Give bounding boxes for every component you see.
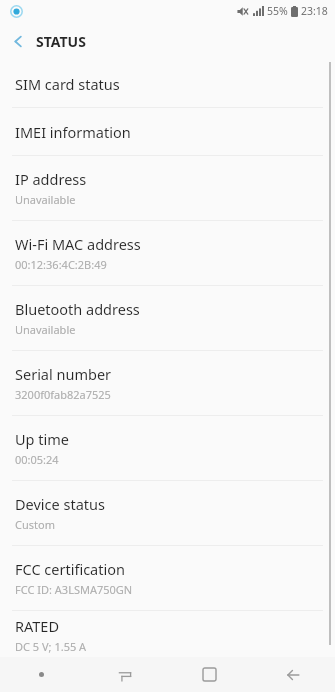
button[interactable]: RATED [0, 611, 335, 659]
staticText: STATUS [36, 32, 86, 51]
button[interactable]: Device status [0, 481, 335, 545]
staticText: DC 5 V; 1.55 A [15, 639, 87, 654]
button[interactable]: SIM card status [0, 60, 335, 107]
button[interactable]: Serial number [0, 351, 335, 415]
staticText: RATED [15, 616, 59, 636]
staticText: Unavailable [15, 192, 76, 207]
staticText: Custom [15, 517, 55, 532]
staticText: 23:18 [301, 4, 328, 18]
button[interactable]: Bluetooth address [0, 286, 335, 350]
staticText: 00:05:24 [15, 452, 59, 467]
staticText: Unavailable [15, 322, 76, 337]
button[interactable]: IMEI information [0, 108, 335, 155]
button[interactable]: Assistant [0, 657, 83, 692]
staticText: IP address [15, 169, 87, 189]
staticText: 00:12:36:4C:2B:49 [15, 257, 107, 272]
button[interactable]: IP address [0, 156, 335, 220]
staticText: Serial number [15, 364, 112, 384]
staticText: IMEI information [15, 122, 131, 142]
staticText: Device status [15, 494, 105, 514]
button[interactable]: Up time [0, 416, 335, 480]
staticText: Bluetooth address [15, 299, 140, 319]
staticText: FCC ID: A3LSMA750GN [15, 582, 133, 597]
button[interactable]: Back [251, 657, 335, 692]
staticText: SIM card status [15, 74, 120, 94]
staticText: 3200f0fab82a7525 [15, 387, 111, 402]
staticText: Wi-Fi MAC address [15, 234, 141, 254]
staticText: FCC certification [15, 559, 125, 579]
button[interactable]: Switch apps [83, 657, 167, 692]
staticText: 55% [267, 4, 288, 18]
button[interactable]: Recent apps [167, 657, 251, 692]
button[interactable]: Back [0, 22, 36, 60]
button[interactable]: FCC certification [0, 546, 335, 610]
button[interactable]: Wi-Fi MAC address [0, 221, 335, 285]
staticText: Up time [15, 429, 69, 449]
